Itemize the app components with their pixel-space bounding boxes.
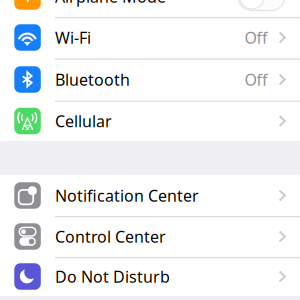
staticText: Bluetooth: [55, 69, 130, 90]
staticText: Airplane Mode: [55, 0, 166, 7]
staticText: Cellular: [55, 110, 112, 132]
button[interactable]: Airplane Mode: [0, 0, 300, 17]
button[interactable]: Wi-Fi: [0, 17, 300, 58]
button[interactable]: Do Not Disturb: [0, 256, 300, 297]
staticText: Do Not Disturb: [55, 266, 170, 287]
button[interactable]: Cellular: [0, 100, 300, 141]
staticText: Control Center: [55, 226, 166, 247]
button[interactable]: Control Center: [0, 216, 300, 257]
staticText: Off: [244, 27, 267, 48]
staticText: Wi-Fi: [55, 27, 91, 48]
staticText: Notification Center: [55, 185, 199, 206]
button[interactable]: Bluetooth: [0, 59, 300, 100]
button[interactable]: Notification Center: [0, 175, 300, 216]
staticText: Off: [244, 69, 267, 90]
